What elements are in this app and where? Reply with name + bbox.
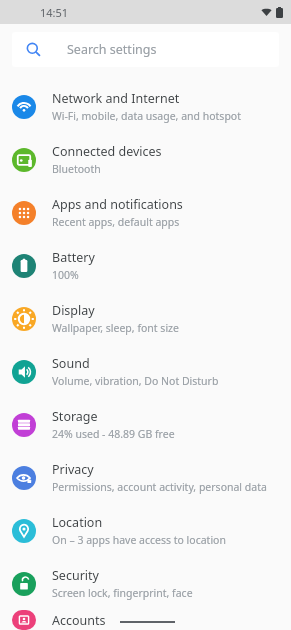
staticText: Search settings [67,41,157,58]
button[interactable]: Location [0,504,291,557]
button[interactable]: Display [0,292,291,345]
button[interactable]: Connected devices [0,133,291,186]
staticText: Bluetooth [52,162,101,176]
staticText: Wi-Fi, mobile, data usage, and hotspot [52,109,241,123]
staticText: Screen lock, fingerprint, face [52,586,193,600]
staticText: Apps and notifications [52,196,183,213]
button[interactable]: Accounts [0,610,291,630]
button[interactable]: Battery [0,239,291,292]
staticText: 24% used - 48.89 GB free [52,427,175,441]
staticText: Wallpaper, sleep, font size [52,321,179,335]
staticText: Volume, vibration, Do Not Disturb [52,374,219,388]
staticText: Battery [52,249,95,266]
staticText: Recent apps, default apps [52,215,180,229]
button[interactable]: Network and Internet [0,80,291,133]
button[interactable]: Search settings [12,32,279,67]
button[interactable]: Sound [0,345,291,398]
button[interactable]: Storage [0,398,291,451]
staticText: Permissions, account activity, personal … [52,480,267,494]
button[interactable]: Privacy [0,451,291,504]
staticText: Location [52,514,103,531]
staticText: 100% [52,268,79,282]
staticText: Accounts [52,612,106,629]
staticText: Privacy [52,461,94,478]
staticText: Security [52,567,99,584]
staticText: Connected devices [52,143,162,160]
staticText: Storage [52,408,98,425]
staticText: 14:51 [40,5,69,20]
staticText: Network and Internet [52,90,180,107]
button[interactable]: Apps and notifications [0,186,291,239]
staticText: On – 3 apps have access to location [52,533,226,547]
button[interactable]: Security [0,557,291,610]
staticText: Display [52,302,95,319]
staticText: Sound [52,355,90,372]
